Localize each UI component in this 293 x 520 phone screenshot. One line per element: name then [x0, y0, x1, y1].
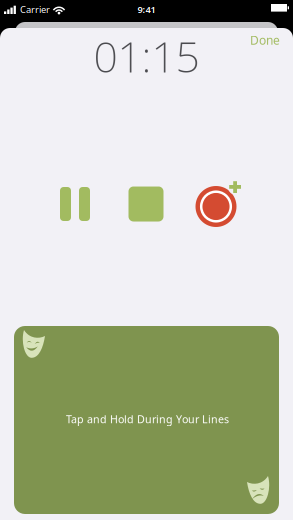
staticText: 01:15 — [93, 28, 199, 84]
button[interactable]: Tap and Hold During Your Lines — [14, 326, 279, 514]
staticText: Done — [250, 32, 280, 48]
button[interactable]: Done — [238, 26, 292, 54]
button[interactable]: New recording — [193, 181, 239, 227]
button[interactable]: Stop — [123, 181, 169, 227]
staticText: Carrier — [20, 3, 50, 16]
staticText: 9:41 — [137, 3, 155, 16]
button[interactable]: Pause — [52, 181, 98, 227]
staticText: Tap and Hold During Your Lines — [66, 412, 229, 426]
